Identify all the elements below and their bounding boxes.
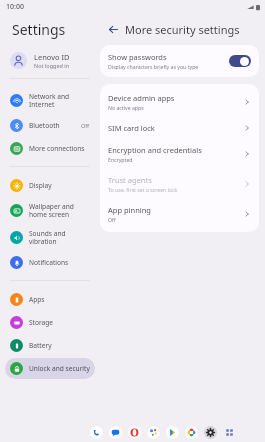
staticText: Notifications — [29, 258, 90, 267]
button[interactable]: phone — [90, 426, 103, 439]
staticText: Show passwords — [108, 52, 167, 62]
staticText: Network and Internet — [29, 92, 90, 109]
button[interactable]: Network and Internet — [5, 88, 95, 113]
staticText: Off — [108, 216, 116, 223]
button[interactable]: Apps — [5, 289, 95, 310]
staticText: App pinning — [108, 205, 151, 215]
button[interactable]: Display — [5, 175, 95, 196]
button[interactable]: Encryption and credentials — [100, 139, 259, 169]
staticText: Lenovo ID — [34, 52, 70, 62]
staticText: Bluetooth — [29, 121, 81, 130]
button[interactable]: Trust agents — [100, 169, 259, 199]
staticText: Unlock and security — [29, 364, 90, 373]
button[interactable]: assistant — [147, 426, 160, 439]
staticText: Battery — [29, 341, 90, 350]
button[interactable]: Bluetooth — [5, 115, 95, 136]
button[interactable]: grid — [223, 426, 236, 439]
staticText: Sounds and vibration — [29, 229, 90, 246]
staticText: Storage — [29, 318, 90, 327]
button[interactable]: play — [166, 426, 179, 439]
staticText: More security settings — [125, 22, 240, 37]
staticText: Device admin apps — [108, 93, 175, 103]
button[interactable]: Wallpaper and home screen — [5, 198, 95, 223]
button[interactable]: Storage — [5, 312, 95, 333]
button[interactable]: SIM card lock — [100, 117, 259, 139]
button[interactable]: Unlock and security — [5, 358, 95, 379]
staticText: Display — [29, 181, 90, 190]
button[interactable]: msg — [109, 426, 122, 439]
button[interactable]: Show passwords toggle — [229, 55, 251, 67]
button[interactable]: settings — [204, 426, 217, 439]
staticText: More connections — [29, 144, 90, 153]
button[interactable]: Lenovo ID — [0, 50, 100, 71]
button[interactable]: opera — [128, 426, 141, 439]
staticText: Settings — [12, 20, 66, 39]
staticText: Encrypted — [108, 156, 133, 163]
button[interactable]: Sounds and vibration — [5, 225, 95, 250]
button[interactable]: More connections — [5, 138, 95, 159]
button[interactable]: App pinning — [100, 199, 259, 229]
staticText: Encryption and credentials — [108, 145, 202, 155]
button[interactable]: photos — [185, 426, 198, 439]
staticText: To use, first set a screen lock — [108, 186, 178, 193]
button[interactable]: Notifications — [5, 252, 95, 273]
staticText: Display characters briefly as you type — [108, 63, 199, 70]
button[interactable]: Show passwords — [100, 45, 259, 77]
staticText: Not logged in — [34, 62, 70, 69]
staticText: No active apps — [108, 104, 144, 111]
button[interactable]: Back — [104, 20, 122, 38]
staticText: Wallpaper and home screen — [29, 202, 90, 219]
staticText: SIM card lock — [108, 123, 155, 133]
button[interactable]: Battery — [5, 335, 95, 356]
staticText: Apps — [29, 295, 90, 304]
staticText: 10:00 — [6, 2, 24, 12]
button[interactable]: Device admin apps — [100, 87, 259, 117]
staticText: Off — [81, 122, 90, 129]
staticText: Trust agents — [108, 175, 152, 185]
